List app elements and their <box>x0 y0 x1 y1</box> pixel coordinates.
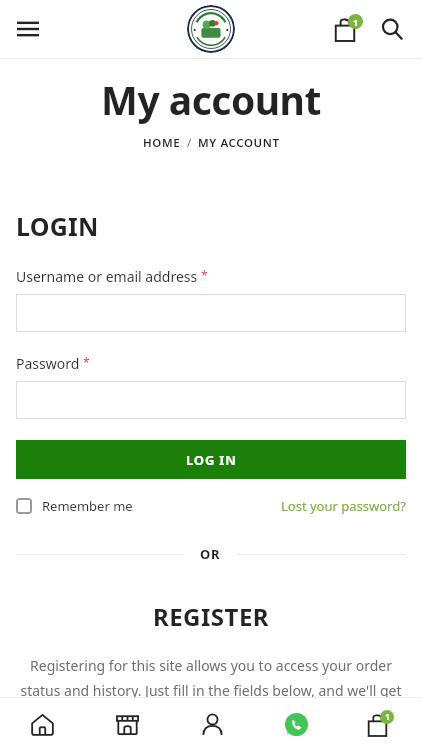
button[interactable]: Remember me <box>16 497 133 515</box>
button[interactable]: Lost your password? <box>281 497 406 515</box>
button[interactable]: Home <box>0 698 85 750</box>
staticText: Registering for this site allows you to … <box>16 656 406 725</box>
staticText: MY ACCOUNT <box>198 135 280 151</box>
staticText: 1 <box>353 16 359 28</box>
button[interactable]: Account <box>170 698 254 750</box>
button[interactable]: HOME <box>143 135 181 151</box>
button[interactable]: LOG IN <box>16 440 406 479</box>
button[interactable] <box>16 294 406 332</box>
staticText: REGISTER <box>16 600 406 633</box>
staticText: * <box>80 354 90 370</box>
button[interactable]: Shop <box>85 698 170 750</box>
staticText: My account <box>0 73 422 126</box>
staticText: * <box>198 267 208 283</box>
button[interactable] <box>187 5 235 53</box>
button[interactable]: Cart, 1 item <box>326 7 370 51</box>
staticText: Remember me <box>42 497 133 515</box>
staticText: LOG IN <box>186 451 237 469</box>
staticText: LOGIN <box>16 209 99 243</box>
staticText: 1 <box>385 711 390 723</box>
button[interactable]: Cart, 1 item <box>338 698 422 750</box>
staticText: OR <box>200 545 221 563</box>
staticText: Password <box>16 354 80 373</box>
button[interactable]: Search <box>370 7 414 51</box>
button[interactable] <box>16 381 406 419</box>
button[interactable]: WhatsApp <box>254 698 338 750</box>
button[interactable]: Menu <box>6 7 50 51</box>
staticText: Username or email address <box>16 267 198 286</box>
staticText: / <box>181 135 198 151</box>
